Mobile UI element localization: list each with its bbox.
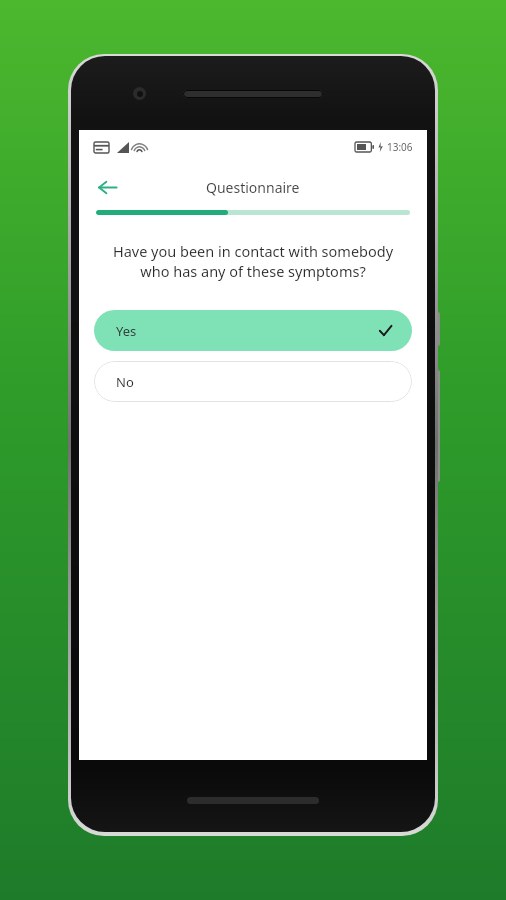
staticText: Questionnaire [206, 178, 300, 197]
button[interactable]: No [94, 361, 412, 402]
staticText: Yes [116, 322, 137, 340]
staticText: Have you been in contact with somebody w… [107, 241, 399, 282]
button[interactable]: Yes [94, 310, 412, 351]
staticText: 13:06 [387, 140, 413, 154]
staticText: No [116, 373, 134, 391]
button[interactable]: Back [87, 167, 127, 207]
